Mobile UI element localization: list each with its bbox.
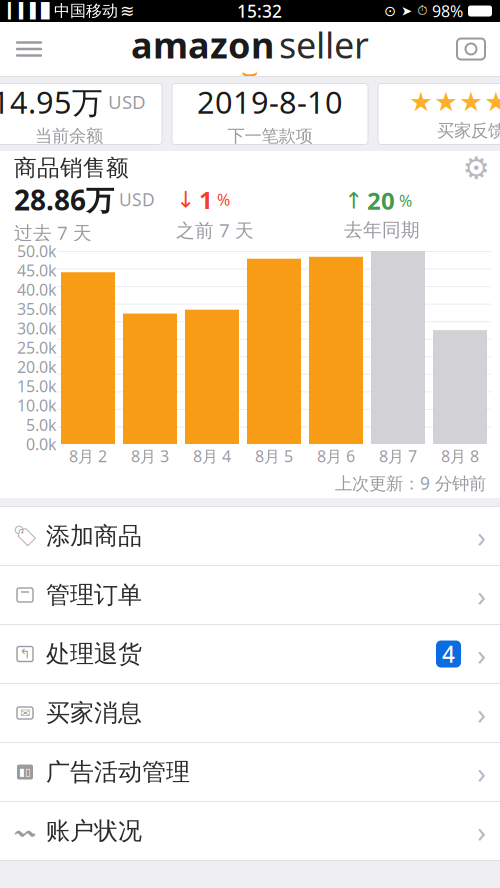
staticText: 30.0k xyxy=(17,318,57,339)
button[interactable]: 2019-8-10 xyxy=(172,83,368,144)
button[interactable]: Menu xyxy=(0,22,58,76)
staticText: 〰 xyxy=(15,817,35,845)
staticText: 下一笔款项 xyxy=(227,125,312,146)
button[interactable]: Settings xyxy=(456,151,496,185)
button[interactable]: 〰 xyxy=(0,802,500,861)
staticText: 2019-8-10 xyxy=(197,81,343,122)
staticText: › xyxy=(477,575,486,614)
staticText: seller xyxy=(279,21,369,68)
staticText: › xyxy=(477,693,486,732)
staticText: 管理订单 xyxy=(46,580,142,610)
staticText: ≋ xyxy=(120,1,135,21)
staticText: 账户状况 xyxy=(46,816,142,846)
staticText: ⚙ xyxy=(462,151,489,185)
staticText: 98% xyxy=(432,0,463,22)
staticText: 20.0k xyxy=(17,356,57,377)
staticText: ⏱ xyxy=(417,4,427,17)
staticText: USD xyxy=(119,188,155,211)
button[interactable]: ↰ xyxy=(0,625,500,684)
staticText: 40.0k xyxy=(17,279,57,300)
staticText: ↓ xyxy=(176,187,195,212)
staticText: ▮▯ xyxy=(19,766,31,778)
staticText: ✉ xyxy=(20,706,30,720)
staticText: 25.0k xyxy=(17,337,57,358)
staticText: 商品销售额 xyxy=(14,154,129,182)
staticText: 20 xyxy=(367,185,395,216)
staticText: ★ xyxy=(459,87,483,117)
staticText: 4 xyxy=(442,639,455,669)
staticText: ▎▍▌▊ xyxy=(8,3,52,19)
button[interactable]: ▮▯ xyxy=(0,743,500,802)
staticText: 45.0k xyxy=(17,260,57,281)
button[interactable]: Camera xyxy=(442,22,500,76)
button[interactable]: 管理订单 xyxy=(0,566,500,625)
staticText: ↰ xyxy=(19,646,30,661)
staticText: 28.86万 xyxy=(14,181,114,218)
staticText: ★ xyxy=(434,87,458,117)
staticText: ↑ xyxy=(344,188,363,213)
staticText: ★ xyxy=(484,87,500,117)
staticText: 买家消息 xyxy=(46,698,142,728)
staticText: 上次更新：9 分钟前 xyxy=(335,471,486,494)
staticText: 8月 5 xyxy=(255,445,293,467)
staticText: USD xyxy=(108,89,146,114)
staticText: › xyxy=(477,634,486,673)
staticText: › xyxy=(477,811,486,850)
staticText: 8月 6 xyxy=(317,445,355,467)
staticText: 过去 7 天 xyxy=(14,220,92,245)
staticText: 8月 4 xyxy=(193,445,231,467)
staticText: 1 xyxy=(199,184,213,216)
staticText: ★ xyxy=(409,87,433,117)
staticText: 处理退货 xyxy=(46,639,142,669)
button[interactable]: 🏷 xyxy=(0,507,500,566)
button[interactable]: ★ xyxy=(378,83,500,144)
staticText: % xyxy=(217,189,230,210)
staticText: % xyxy=(399,190,412,211)
staticText: 当前余额 xyxy=(35,125,103,146)
button[interactable]: 14.95万 xyxy=(0,83,162,144)
button[interactable]: ✉ xyxy=(0,684,500,743)
staticText: amazon xyxy=(131,21,274,68)
staticText: 8月 7 xyxy=(379,445,417,467)
staticText: 之前 7 天 xyxy=(176,217,254,242)
staticText: 15:32 xyxy=(237,0,282,22)
staticText: 买家反馈 xyxy=(437,120,500,141)
staticText: 5.0k xyxy=(26,414,57,435)
staticText: 8月 2 xyxy=(69,445,107,467)
staticText: ⊙ xyxy=(384,3,396,19)
staticText: 35.0k xyxy=(17,298,57,319)
staticText: 10.0k xyxy=(17,395,57,416)
staticText: 15.0k xyxy=(17,375,57,397)
staticText: 8月 3 xyxy=(131,445,169,467)
staticText: › xyxy=(477,752,486,791)
staticText: ⌣ xyxy=(241,60,259,86)
staticText: 中国移动 xyxy=(54,1,118,21)
staticText: 8月 8 xyxy=(441,445,479,467)
staticText: 50.0k xyxy=(17,240,57,262)
staticText: 🏷 xyxy=(12,525,37,547)
staticText: 广告活动管理 xyxy=(46,757,190,787)
staticText: 添加商品 xyxy=(46,521,142,551)
staticText: ➤ xyxy=(401,3,412,18)
staticText: 14.95万 xyxy=(0,81,103,122)
staticText: 去年同期 xyxy=(344,218,420,241)
staticText: 0.0k xyxy=(26,433,57,455)
staticText: › xyxy=(477,516,486,555)
